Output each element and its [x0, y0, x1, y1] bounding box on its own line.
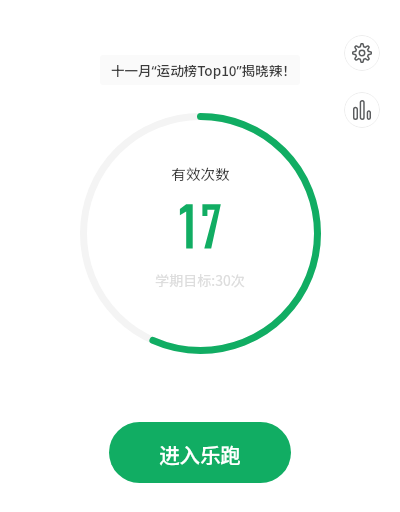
button[interactable]: 进入乐跑	[109, 422, 291, 483]
button[interactable]: Statistics	[344, 92, 380, 128]
button[interactable]: 十一月“运动榜Top10”揭晓辣！	[100, 55, 300, 85]
staticText: 十一月“运动榜Top10”揭晓辣！	[111, 60, 296, 80]
staticText: 学期目标:30次	[155, 270, 245, 290]
button[interactable]: Settings	[344, 35, 380, 71]
staticText: 进入乐跑	[159, 439, 241, 469]
staticText: 有效次数	[171, 163, 230, 184]
